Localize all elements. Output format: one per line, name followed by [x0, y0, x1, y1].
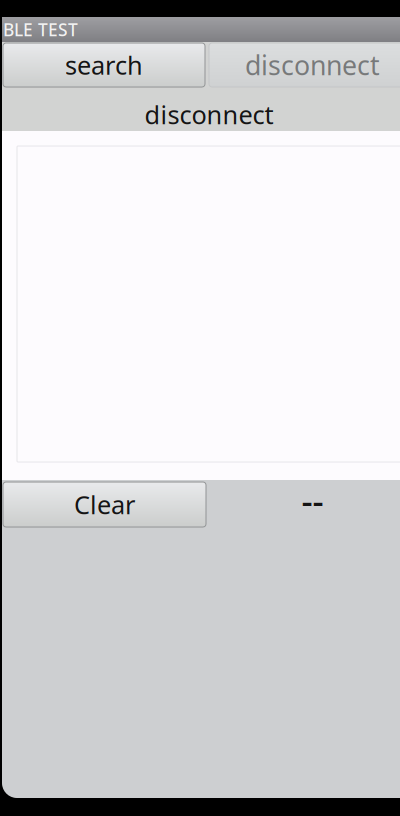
button[interactable]: search: [3, 43, 205, 87]
staticText: search: [65, 48, 143, 82]
button[interactable]: disconnect: [209, 43, 400, 87]
staticText: disconnect: [144, 98, 273, 131]
staticText: Clear: [74, 488, 135, 521]
staticText: BLE TEST: [3, 18, 78, 41]
button[interactable]: Clear: [3, 482, 206, 527]
staticText: disconnect: [245, 47, 380, 83]
staticText: --: [301, 477, 323, 523]
